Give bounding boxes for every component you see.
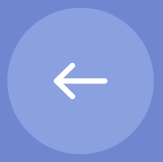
button[interactable]: Back: [8, 8, 155, 154]
